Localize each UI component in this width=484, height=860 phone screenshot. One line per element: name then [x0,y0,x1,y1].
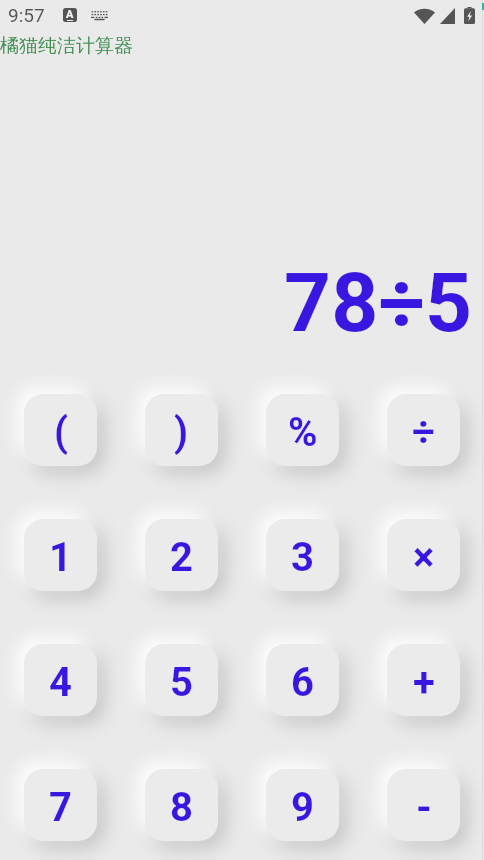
button[interactable]: 7 [24,769,97,841]
staticText: 9:57 [8,4,45,26]
button[interactable]: × [387,519,460,591]
staticText: 6 [291,659,314,706]
button[interactable]: + [387,644,460,716]
button[interactable]: - [387,769,460,841]
button[interactable]: 9 [266,769,339,841]
button[interactable]: % [266,394,339,466]
button[interactable]: 4 [24,644,97,716]
button[interactable]: 3 [266,519,339,591]
staticText: 1 [49,534,72,581]
staticText: 3 [291,534,314,581]
staticText: 5 [170,659,193,706]
button[interactable]: ) [145,394,218,466]
button[interactable]: 6 [266,644,339,716]
staticText: 8 [170,784,193,831]
button[interactable]: 5 [145,644,218,716]
staticText: % [288,409,318,456]
button[interactable]: ÷ [387,394,460,466]
staticText: 7 [49,784,72,831]
button[interactable]: ( [24,394,97,466]
staticText: ( [54,409,68,456]
button[interactable]: 8 [145,769,218,841]
staticText: + [413,659,435,706]
staticText: - [416,784,432,831]
staticText: 橘猫纯洁计算器 [0,34,133,58]
staticText: A [66,8,74,21]
staticText: × [413,534,435,581]
staticText: 9 [291,784,314,831]
staticText: 4 [49,659,72,706]
button[interactable]: 2 [145,519,218,591]
staticText: ÷ [412,409,435,456]
staticText: 78÷5 [284,255,472,351]
staticText: 2 [170,534,193,581]
button[interactable]: 1 [24,519,97,591]
staticText: ) [174,409,189,456]
